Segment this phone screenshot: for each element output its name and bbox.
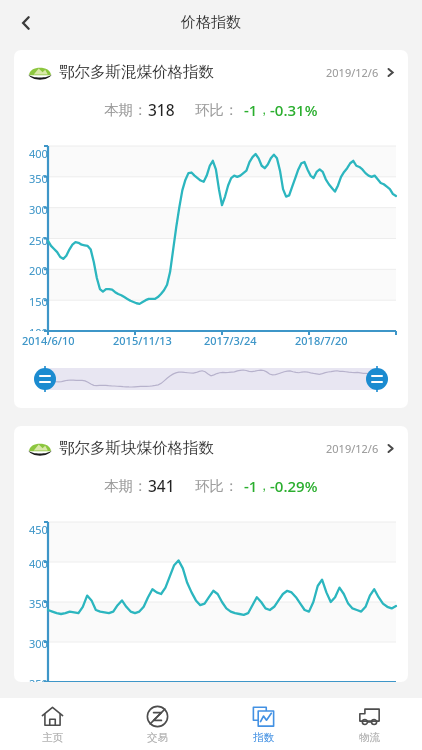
button[interactable]: 指数 xyxy=(210,698,316,750)
staticText: 400 xyxy=(29,146,48,161)
button[interactable]: 鄂尔多斯块煤价格指数 xyxy=(14,426,408,682)
button[interactable]: 交易 xyxy=(105,698,210,750)
staticText: 318 xyxy=(148,99,175,120)
staticText: 350 xyxy=(29,596,48,611)
staticText: 环比： xyxy=(195,477,239,495)
staticText: 300 xyxy=(29,202,48,217)
staticText: 450 xyxy=(29,522,48,537)
staticText: ， xyxy=(258,102,270,117)
staticText: 350 xyxy=(29,171,48,186)
staticText: 指数 xyxy=(253,731,274,744)
staticText: 100 xyxy=(29,325,48,331)
staticText: 2015/11/13 xyxy=(113,333,172,348)
staticText: 2014/6/10 xyxy=(22,333,75,348)
staticText: 物流 xyxy=(359,731,380,744)
button[interactable]: Back xyxy=(6,3,46,43)
staticText: 400 xyxy=(29,556,48,571)
staticText: ， xyxy=(258,478,270,493)
staticText: 主页 xyxy=(42,731,63,744)
staticText: 2019/12/6 xyxy=(326,65,379,80)
staticText: 250 xyxy=(29,233,48,248)
staticText: 341 xyxy=(148,475,175,496)
staticText: 2019/12/6 xyxy=(326,441,379,456)
staticText: 2018/7/20 xyxy=(295,333,348,348)
staticText: 环比： xyxy=(195,101,239,119)
staticText: 2017/3/24 xyxy=(204,333,257,348)
staticText: 本期： xyxy=(104,101,148,119)
staticText: -1 xyxy=(244,476,258,496)
staticText: 本期： xyxy=(104,477,148,495)
staticText: 鄂尔多斯块煤价格指数 xyxy=(59,438,214,458)
button[interactable]: 鄂尔多斯混煤价格指数 xyxy=(14,50,408,408)
staticText: -0.31% xyxy=(270,100,318,120)
staticText: 250 xyxy=(29,676,48,682)
staticText: -1 xyxy=(244,100,258,120)
staticText: -0.29% xyxy=(270,476,318,496)
button[interactable]: 物流 xyxy=(316,698,422,750)
staticText: 300 xyxy=(29,636,48,651)
staticText: 鄂尔多斯混煤价格指数 xyxy=(59,62,214,82)
button[interactable]: 主页 xyxy=(0,698,105,750)
staticText: 150 xyxy=(29,294,48,309)
staticText: 交易 xyxy=(147,731,168,744)
staticText: 价格指数 xyxy=(181,13,241,32)
staticText: 200 xyxy=(29,263,48,278)
